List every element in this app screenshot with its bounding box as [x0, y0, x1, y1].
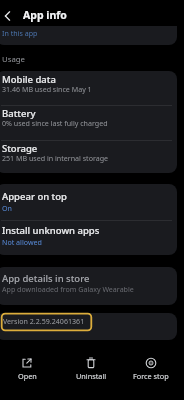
staticText: Battery [2, 107, 36, 120]
staticText: Usage [2, 54, 26, 65]
button[interactable]: Uninstall [71, 357, 111, 387]
button[interactable] [0, 5, 19, 27]
button[interactable]: Force stop [131, 357, 171, 387]
staticText: Force stop [133, 371, 169, 381]
staticText: Uninstall [76, 371, 107, 381]
staticText: Not allowed [2, 237, 42, 247]
staticText: Install unknown apps [2, 224, 100, 237]
button[interactable]: Mobile data [0, 71, 177, 105]
staticText: App info [23, 8, 67, 22]
staticText: 31.46 MB used since May 1 [2, 84, 92, 94]
button[interactable]: Appear on top [0, 184, 177, 219]
staticText: 251 MB used in internal storage [2, 153, 109, 163]
staticText: 0% used since last fully charged [2, 118, 108, 128]
staticText: In this app [2, 28, 38, 38]
staticText: Version 2.2.59.24061361 [3, 316, 85, 326]
staticText: Open [18, 371, 37, 381]
staticText: App downloaded from Galaxy Wearable [2, 284, 134, 294]
staticText: Storage [2, 142, 38, 155]
button[interactable]: Install unknown apps [0, 220, 177, 255]
button[interactable]: In this app [0, 26, 177, 45]
staticText: App details in store [2, 272, 90, 285]
button[interactable]: Version 2.2.59.24061361 [0, 313, 177, 340]
button[interactable]: Open [7, 357, 47, 387]
staticText: Mobile data [2, 73, 56, 86]
button[interactable]: Storage [0, 140, 177, 173]
staticText: On [2, 203, 12, 213]
button[interactable]: App details in store [0, 267, 177, 305]
staticText: Appear on top [2, 190, 67, 203]
button[interactable]: Battery [0, 106, 177, 140]
